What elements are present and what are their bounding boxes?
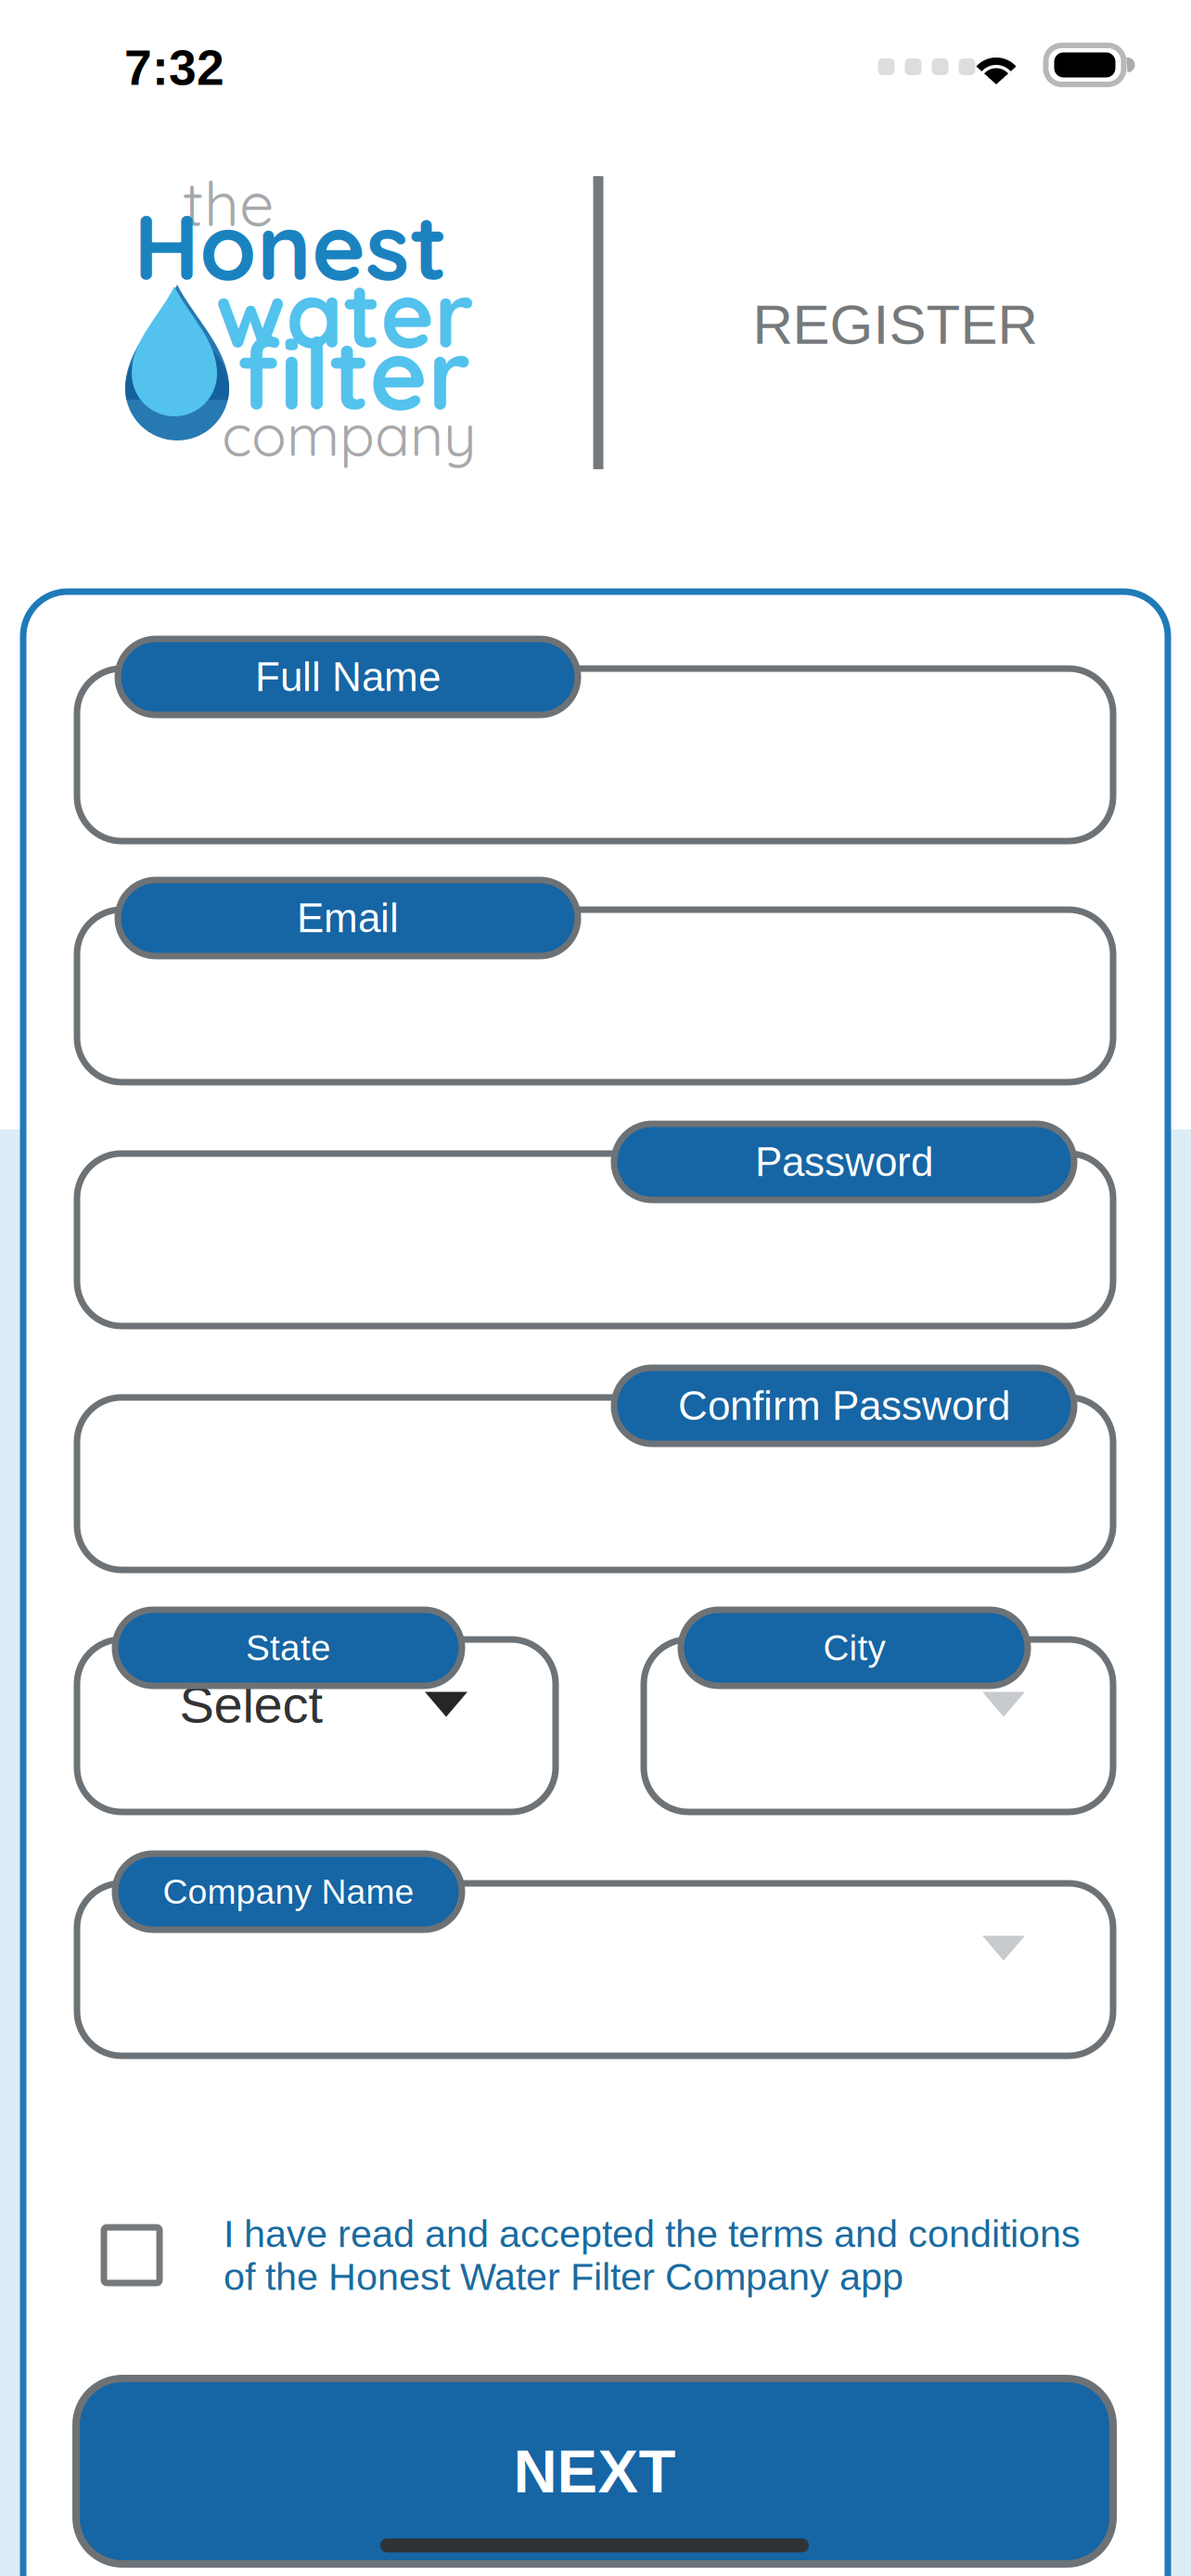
- staticText: water: [215, 256, 474, 370]
- staticText: 7:32: [124, 40, 224, 95]
- staticText: Full Name: [255, 654, 441, 700]
- staticText: NEXT: [513, 2437, 676, 2505]
- button[interactable]: Full Name: [118, 639, 578, 715]
- staticText: filter: [237, 311, 470, 434]
- button[interactable]: Password: [614, 1124, 1074, 1200]
- staticText: the: [183, 164, 275, 241]
- staticText: I have read and accepted the terms and c…: [224, 2212, 1081, 2298]
- staticText: Company Name: [163, 1872, 414, 1911]
- staticText: State: [246, 1628, 331, 1668]
- staticText: Password: [755, 1139, 933, 1185]
- button[interactable]: City: [681, 1610, 1028, 1686]
- staticText: City: [823, 1628, 885, 1668]
- staticText: Confirm Password: [678, 1383, 1010, 1429]
- staticText: Honest: [134, 188, 447, 303]
- staticText: Email: [297, 895, 399, 941]
- staticText: Select: [179, 1675, 323, 1733]
- button[interactable]: Accept terms and conditions: [104, 2227, 160, 2283]
- button[interactable]: State: [115, 1610, 462, 1686]
- staticText: REGISTER: [753, 293, 1037, 356]
- button[interactable]: NEXT: [76, 2378, 1113, 2564]
- button[interactable]: Email: [118, 880, 578, 956]
- button[interactable]: Confirm Password: [614, 1368, 1074, 1444]
- staticText: company: [222, 398, 477, 470]
- button[interactable]: Company Name: [115, 1854, 462, 1930]
